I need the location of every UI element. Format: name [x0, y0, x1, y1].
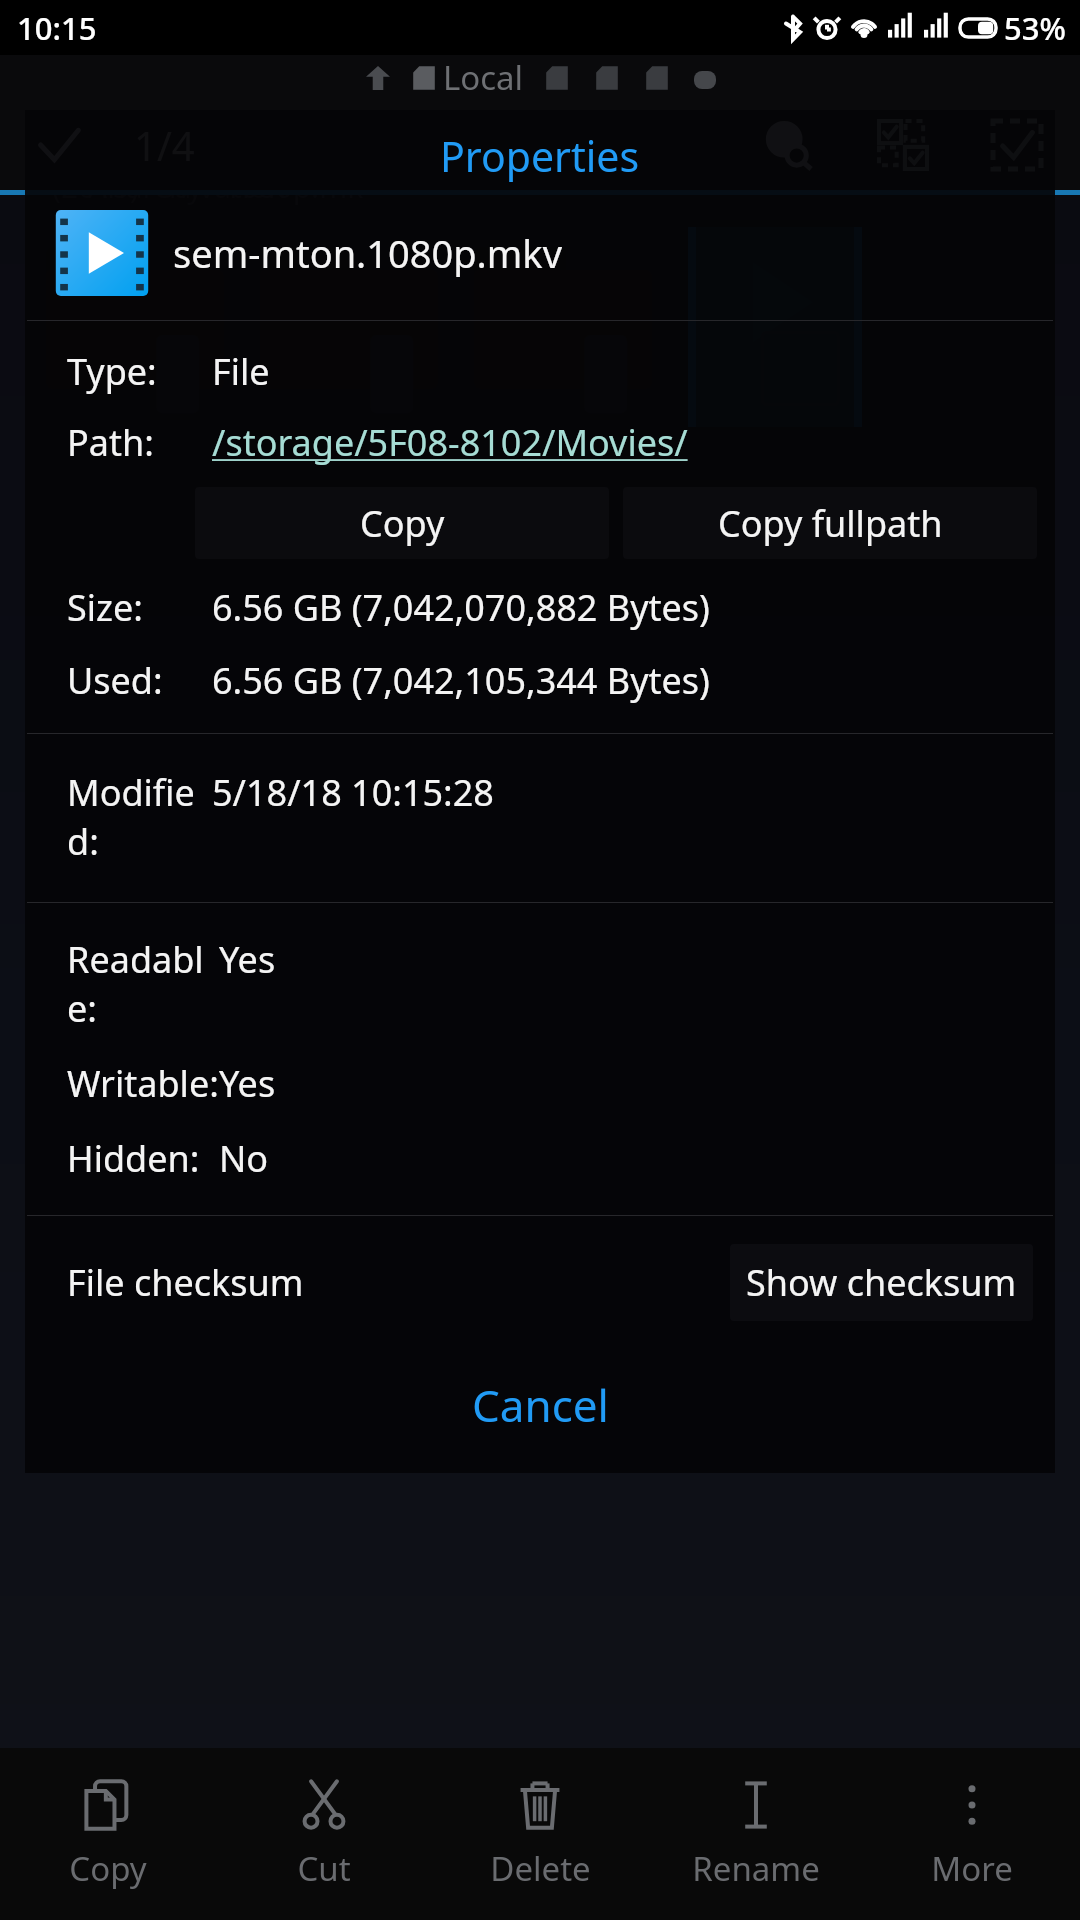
- staticText: Used:: [67, 656, 212, 705]
- staticText: 1/4: [134, 118, 195, 172]
- staticText: Size:: [67, 583, 212, 632]
- button[interactable]: Copy: [0, 1748, 216, 1920]
- staticText: The Salvation: [158, 125, 287, 207]
- staticText: Rename: [692, 1846, 820, 1891]
- button[interactable]: Show checksum: [730, 1244, 1033, 1321]
- staticText: Properties: [440, 128, 640, 184]
- staticText: Sons of Anarchy: [88, 125, 203, 207]
- button[interactable]: Storage: [538, 59, 576, 97]
- staticText: Readable:: [67, 935, 219, 1033]
- staticText: Writable:: [67, 1059, 219, 1108]
- staticText: Copy fullpath: [718, 499, 943, 548]
- staticText: Cut: [297, 1846, 351, 1891]
- staticText: sem-mton.1080p.mkv: [173, 227, 562, 279]
- staticText: Path:: [67, 418, 212, 467]
- staticText: Show checksum: [746, 1258, 1017, 1307]
- button[interactable]: More: [864, 1748, 1080, 1920]
- staticText: Modified:: [67, 768, 212, 866]
- button[interactable]: Cut: [216, 1748, 432, 1920]
- staticText: 5/18/18 10:15:28: [212, 768, 494, 817]
- staticText: File: [212, 347, 270, 396]
- staticText: Delete: [490, 1846, 591, 1891]
- button[interactable]: Apps: [688, 61, 722, 95]
- staticText: Local: [443, 55, 524, 100]
- staticText: 10:15: [17, 7, 97, 49]
- button[interactable]: Delete: [432, 1748, 648, 1920]
- button[interactable]: Storage: [588, 59, 626, 97]
- staticText: Cancel: [472, 1375, 609, 1435]
- button[interactable]: Invert selection: [860, 102, 946, 188]
- staticText: 6.56 GB (7,042,105,344 Bytes): [212, 656, 710, 705]
- button[interactable]: Copy fullpath: [623, 487, 1037, 559]
- staticText: Copy: [69, 1846, 147, 1891]
- button[interactable]: Copy: [195, 487, 609, 559]
- button[interactable]: Cancel: [25, 1359, 1055, 1451]
- staticText: No: [219, 1134, 269, 1183]
- staticText: Copy: [360, 499, 445, 548]
- staticText: File checksum: [67, 1258, 304, 1307]
- button[interactable]: Select all: [974, 102, 1060, 188]
- staticText: Si… (2015): [52, 125, 139, 207]
- button[interactable]: Local: [409, 55, 524, 100]
- staticText: 53%: [1004, 7, 1066, 49]
- staticText: Yes: [219, 935, 276, 984]
- button[interactable]: Search: [746, 102, 832, 188]
- staticText: Yes: [219, 1059, 276, 1108]
- staticText: More: [931, 1846, 1013, 1891]
- staticText: Hidden:: [67, 1134, 219, 1183]
- staticText: sem-mton. 1080p.mk: [224, 125, 377, 207]
- staticText: /storage/5F08-8102/Movies/: [212, 418, 688, 467]
- staticText: 6.56 GB (7,042,070,882 Bytes): [212, 583, 710, 632]
- button[interactable]: Rename: [648, 1748, 864, 1920]
- staticText: Type:: [67, 347, 212, 396]
- button[interactable]: Home: [359, 59, 397, 97]
- button[interactable]: Storage: [638, 59, 676, 97]
